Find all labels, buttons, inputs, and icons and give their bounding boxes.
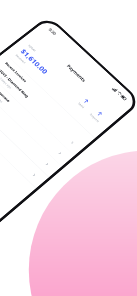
staticText: Request — [89, 112, 100, 123]
button[interactable]: #1041 - Gold Chain — [0, 79, 62, 177]
button[interactable]: Request money — [87, 106, 108, 125]
staticText: Recent Invoices — [4, 61, 28, 83]
staticText: Received — [15, 53, 27, 64]
staticText: $1,610.00 — [19, 47, 50, 76]
staticText: Payments — [65, 63, 87, 83]
button[interactable]: #1040 - Silver Band — [0, 89, 49, 188]
staticText: 9:30 — [47, 27, 58, 36]
staticText: #1043 - Diamond Ring — [0, 67, 30, 98]
staticText: Pending · 5 days ago — [0, 81, 4, 103]
staticText: #1042 - Showcase — [0, 77, 11, 103]
staticText: TODAY — [27, 44, 37, 53]
staticText: Send — [77, 102, 85, 109]
button[interactable]: Send money — [75, 95, 93, 111]
staticText: Paid · 2 days ago — [0, 71, 13, 89]
button[interactable]: #1043 - Diamond Ring — [0, 59, 87, 156]
button[interactable]: #1042 - Showcase — [0, 69, 74, 167]
